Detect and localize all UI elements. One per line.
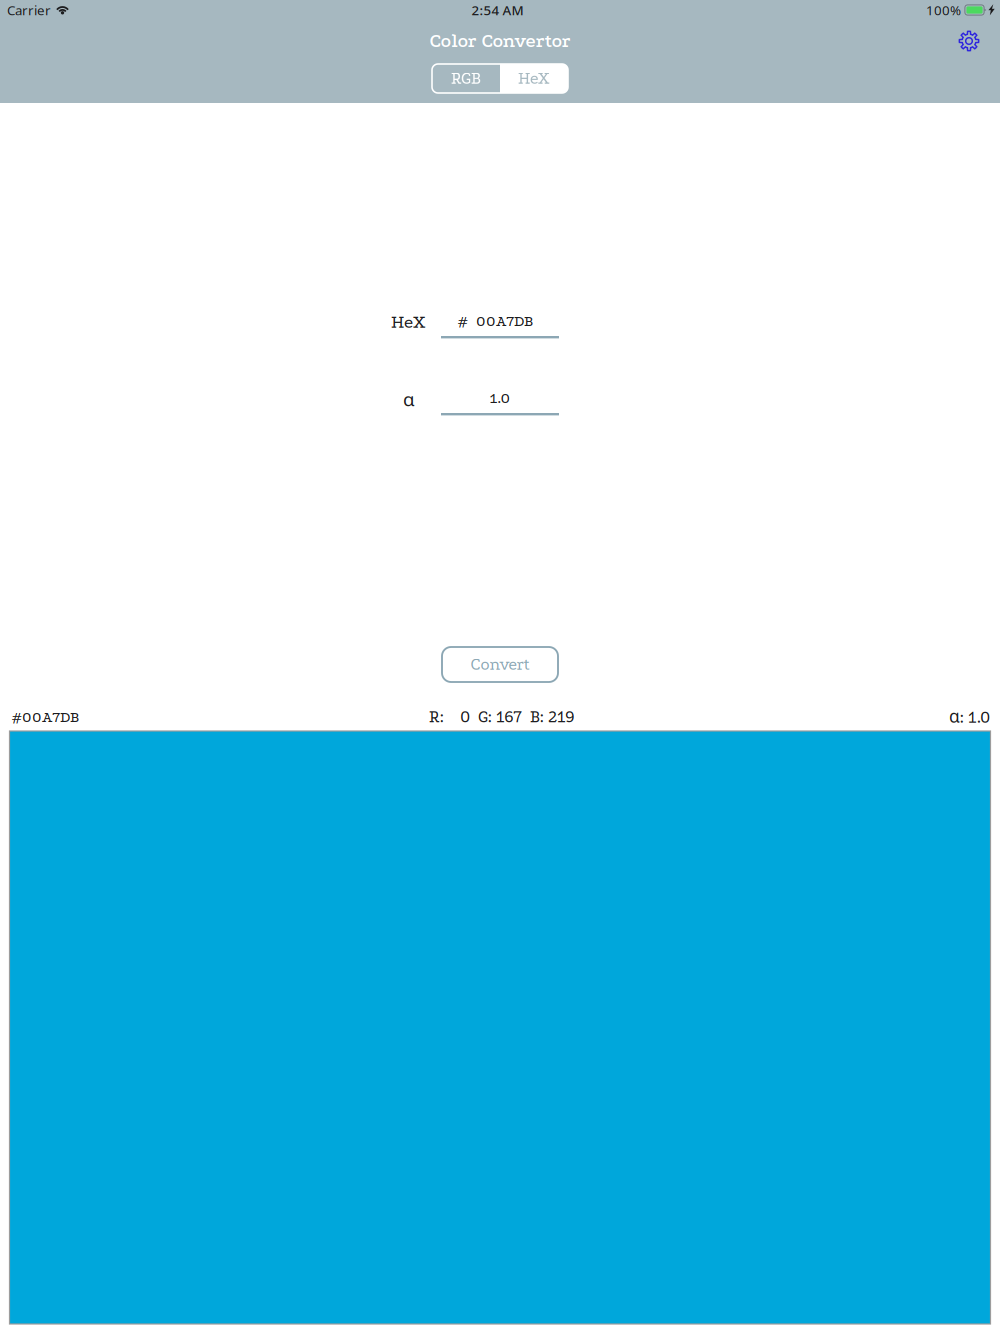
- staticText: Convert: [470, 655, 529, 674]
- button[interactable]: Convert: [442, 647, 558, 682]
- staticText: 100%: [926, 1, 961, 19]
- staticText: Color Convertor: [429, 30, 570, 52]
- button[interactable]: Settings: [951, 23, 987, 59]
- staticText: #00A7DB: [12, 708, 79, 726]
- staticText: 2:54 AM: [471, 1, 523, 19]
- staticText: 1.0: [489, 389, 510, 407]
- staticText: R: 0 G: 167 B: 219: [429, 707, 575, 727]
- staticText: α: 1.0: [949, 704, 990, 728]
- staticText: HeX: [391, 312, 425, 332]
- staticText: # 00A7DB: [458, 312, 533, 330]
- button[interactable]: RGB: [432, 64, 500, 93]
- staticText: HeX: [518, 69, 550, 88]
- staticText: Carrier: [7, 1, 51, 19]
- staticText: α: [403, 386, 415, 412]
- staticText: RGB: [451, 69, 481, 88]
- button[interactable]: HeX: [500, 64, 568, 93]
